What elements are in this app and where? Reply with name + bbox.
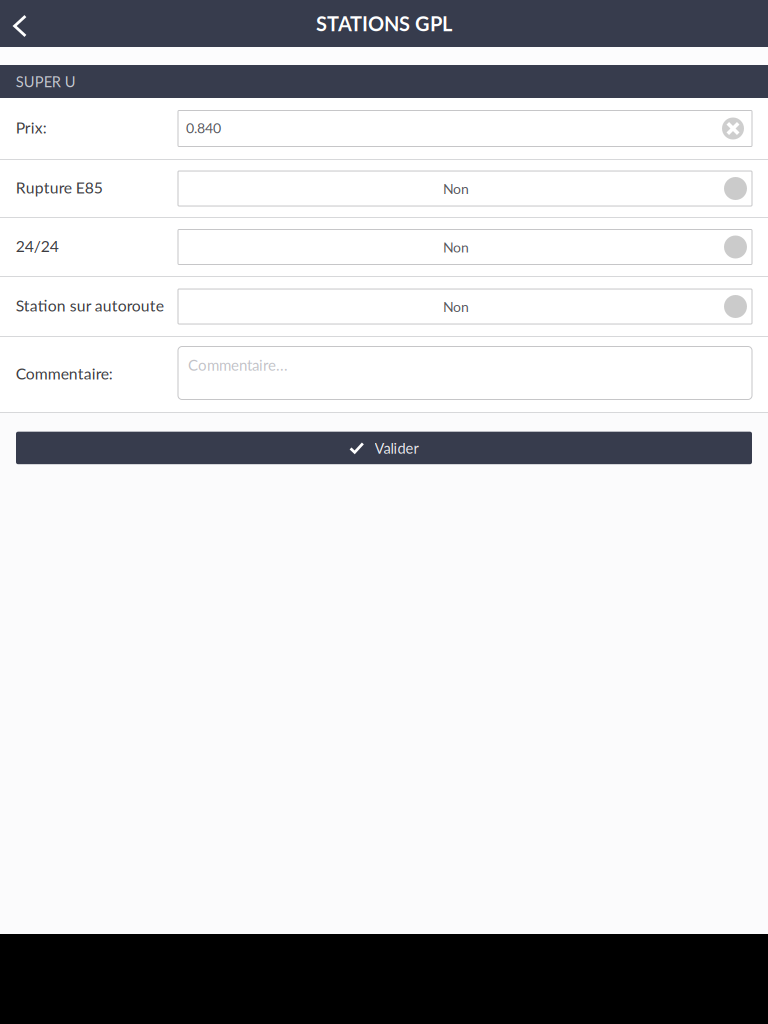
staticText: Non — [443, 298, 469, 315]
staticText: Valider — [375, 439, 419, 457]
button[interactable]: Non — [178, 289, 752, 324]
staticText: SUPER U — [16, 73, 76, 90]
staticText: Non — [443, 180, 469, 197]
button[interactable]: Back — [0, 0, 41, 47]
staticText: 24/24 — [16, 237, 59, 255]
staticText: Non — [443, 239, 469, 255]
staticText: 0.840 — [186, 119, 221, 136]
button[interactable]: Non — [178, 229, 752, 264]
staticText: Commentaire: — [16, 364, 113, 383]
button[interactable]: Commentaire... — [178, 346, 752, 402]
staticText: STATIONS GPL — [316, 11, 452, 35]
staticText: Prix: — [16, 118, 47, 137]
button[interactable]: Clear price — [722, 117, 744, 139]
button[interactable]: 0.840 — [178, 110, 752, 146]
staticText: Commentaire... — [188, 356, 288, 374]
staticText: Rupture E85 — [16, 178, 103, 197]
staticText: Station sur autoroute — [16, 296, 164, 315]
button[interactable]: Non — [178, 171, 752, 206]
button[interactable]: Valider — [16, 432, 752, 464]
